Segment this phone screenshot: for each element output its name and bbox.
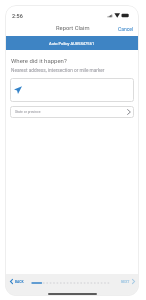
staticText: NEXT <box>121 280 130 284</box>
staticText: BACK <box>15 280 24 284</box>
staticText: Cancel <box>118 26 134 32</box>
button[interactable]: BACK <box>9 278 25 285</box>
staticText: Nearest address, intersection or mile ma… <box>11 68 105 74</box>
button[interactable]: NEXT <box>120 278 136 285</box>
staticText: Where did it happen? <box>11 57 67 64</box>
button[interactable]: State or province <box>10 106 134 118</box>
staticText: Auto Policy AU85847561 <box>49 41 95 46</box>
staticText: Report Claim <box>56 25 90 32</box>
staticText: 2:56 <box>12 13 23 19</box>
button[interactable]: Cancel <box>113 23 139 35</box>
button[interactable]: Use current location <box>10 78 134 102</box>
staticText: State or province <box>15 110 41 114</box>
